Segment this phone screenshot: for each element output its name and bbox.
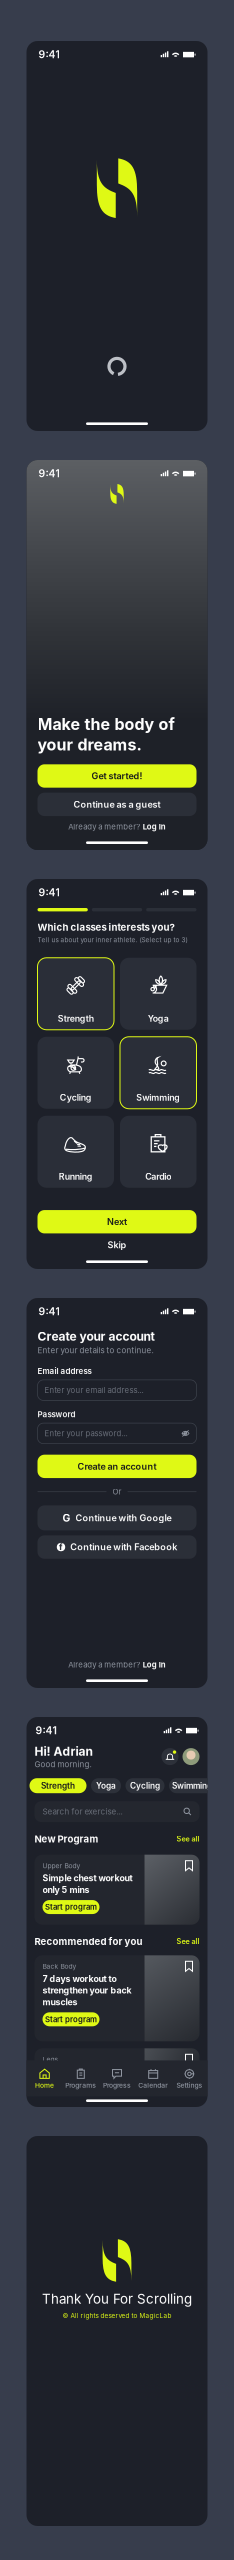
staticText: Skip [107,1239,126,1250]
button[interactable]: Strength [29,1778,86,1793]
staticText: Calendar [138,2081,168,2089]
staticText: Legs [42,2055,58,2063]
button[interactable]: Next [37,1210,196,1233]
staticText: Swimming [136,1092,180,1103]
button[interactable]: Upper Body [34,1855,199,1925]
staticText: Cycling [60,1092,92,1103]
button[interactable]: Cardio [120,1116,196,1188]
button[interactable]: Progress [99,2068,135,2089]
staticText: 9:41 [38,48,59,61]
staticText: Upper Body [42,1862,80,1870]
button[interactable]: f [37,1535,196,1559]
staticText: Continue with Google [75,1512,171,1523]
staticText: New Program [34,1833,98,1845]
button[interactable]: Create an account [37,1455,196,1478]
staticText: Enter your password... [44,1429,127,1438]
staticText: Tell us about your inner athlete. (Selec… [37,936,187,944]
button[interactable]: See all [176,1937,199,1946]
staticText: Start program [45,1902,97,1912]
button[interactable]: Home [26,2068,63,2089]
button[interactable]: Cycling [125,1778,164,1793]
staticText: strengthen your back [42,1985,131,1996]
button[interactable]: Enter your password... [37,1423,196,1444]
staticText: Next [107,1216,127,1227]
button[interactable]: Yoga [91,1778,121,1793]
staticText: Good morning. [34,1759,91,1769]
staticText: Yoga [148,1013,169,1024]
staticText: Enter your email address... [44,1385,143,1395]
staticText: © All rights deserved to MagicLab [62,2312,171,2320]
staticText: Continue with Facebook [70,1542,177,1553]
staticText: Make the body of [37,715,174,734]
staticText: Running [59,1171,93,1182]
staticText: Already a member? [68,1660,140,1669]
staticText: 9:41 [38,1305,59,1318]
staticText: Hi! Adrian [34,1744,92,1758]
staticText: Progress [103,2081,131,2089]
button[interactable]: Profile [182,1748,199,1765]
staticText: Recommended for you [34,1936,142,1947]
staticText: See all [176,1834,199,1843]
staticText: See all [176,1937,199,1946]
staticText: Email address [37,1366,91,1376]
button[interactable]: Continue as a guest [37,793,196,816]
button[interactable]: Legs [34,2048,199,2074]
staticText: Continue as a guest [73,799,160,810]
staticText: Already a member? [68,822,140,831]
staticText: Password [37,1409,75,1419]
staticText: Log In [143,1660,166,1669]
button[interactable]: Yoga [120,958,196,1030]
staticText: Enter your details to continue. [37,1345,153,1355]
staticText: Log In [143,822,166,831]
button[interactable]: Strength [37,958,114,1030]
staticText: Cardio [145,1171,171,1182]
button[interactable]: Already a member? [26,1656,207,1673]
staticText: your dreams. [37,735,141,754]
button[interactable]: G [37,1505,196,1530]
staticText: Create your account [37,1329,154,1343]
staticText: Strength [41,1781,75,1791]
staticText: Yoga [96,1781,116,1791]
staticText: Which classes interests you? [37,921,174,933]
button[interactable]: Notifications [161,1748,178,1765]
staticText: 9:41 [35,1724,56,1737]
staticText: Create an account [77,1461,156,1472]
button[interactable]: Programs [63,2068,99,2089]
staticText: Cycling [130,1781,160,1791]
button[interactable]: Swimming [120,1037,196,1109]
staticText: Home [35,2081,54,2089]
staticText: f [59,1542,63,1552]
staticText: Programs [65,2081,96,2089]
button[interactable]: Get started! [37,764,196,788]
button[interactable]: Running [37,1116,114,1188]
staticText: Simple chest workout [42,1873,132,1883]
staticText: Settings [176,2081,202,2089]
staticText: Or [112,1487,121,1496]
button[interactable]: Enter your email address... [37,1380,196,1400]
staticText: Back Body [42,1962,76,1970]
staticText: Get started! [91,770,142,781]
button[interactable]: Calendar [135,2068,171,2089]
button[interactable]: Skip [26,1234,207,1255]
staticText: Start program [45,2015,97,2024]
button[interactable]: Swimming [169,1778,215,1793]
button[interactable]: See all [176,1834,199,1843]
staticText: only 5 mins [42,1884,89,1895]
staticText: 9:41 [38,886,59,899]
staticText: G [62,1512,70,1524]
button[interactable]: Settings [171,2068,207,2089]
staticText: 9:41 [38,467,59,480]
staticText: 7 days workout to [42,1973,116,1984]
button[interactable]: Back Body [34,1955,199,2041]
button[interactable]: Already a member? [37,818,196,835]
staticText: muscles [42,1997,77,2007]
staticText: Search for exercise... [42,1807,122,1816]
button[interactable]: Cycling [37,1037,114,1109]
staticText: Thank You For Scrolling [42,2291,192,2307]
staticText: Strength [58,1013,94,1024]
staticText: Swimming [172,1781,212,1791]
